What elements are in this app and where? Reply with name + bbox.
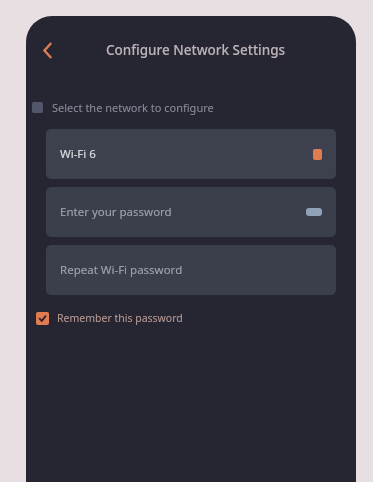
staticText: Enter your password [60, 204, 306, 220]
button[interactable]: Repeat Wi-Fi password [46, 245, 336, 295]
staticText: Repeat Wi-Fi password [60, 262, 322, 278]
button[interactable]: Select the network to configure [32, 100, 350, 115]
button[interactable]: Enter your password [46, 187, 336, 237]
button[interactable]: Back [30, 32, 66, 68]
button[interactable]: Wi-Fi 6 [46, 129, 336, 179]
staticText: Select the network to configure [52, 100, 214, 115]
staticText: Wi-Fi 6 [60, 146, 313, 162]
staticText: Configure Network Settings [106, 41, 286, 59]
button[interactable]: Remember this password [36, 311, 346, 325]
staticText: Remember this password [57, 311, 183, 325]
